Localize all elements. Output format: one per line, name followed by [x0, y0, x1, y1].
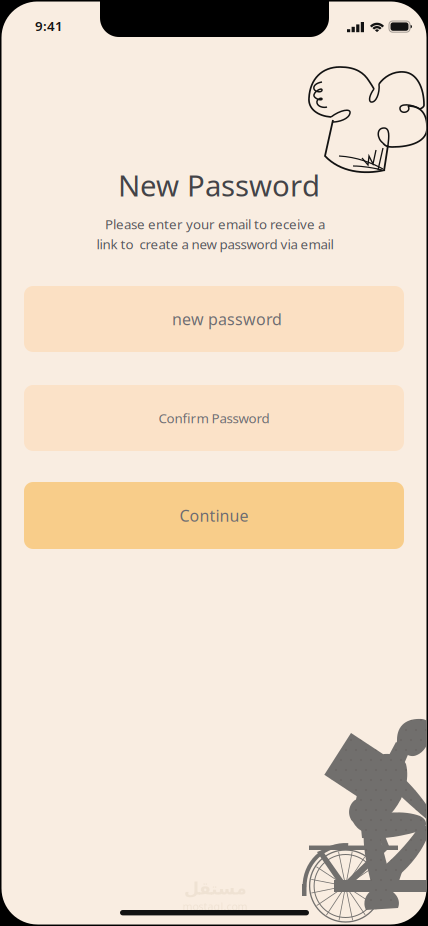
staticText: مستقل: [183, 879, 246, 898]
button[interactable]: new password: [24, 286, 404, 352]
button[interactable]: Confirm Password: [24, 385, 404, 451]
staticText: new password: [172, 308, 282, 330]
staticText: link to create a new password via email: [96, 235, 333, 253]
staticText: mostaql.com: [182, 899, 247, 913]
staticText: Confirm Password: [158, 409, 269, 427]
staticText: Please enter your email to receive a: [105, 215, 325, 233]
button[interactable]: Continue: [24, 482, 404, 549]
staticText: 9:41: [35, 17, 63, 35]
staticText: Continue: [179, 505, 248, 526]
staticText: New Password: [118, 165, 320, 204]
